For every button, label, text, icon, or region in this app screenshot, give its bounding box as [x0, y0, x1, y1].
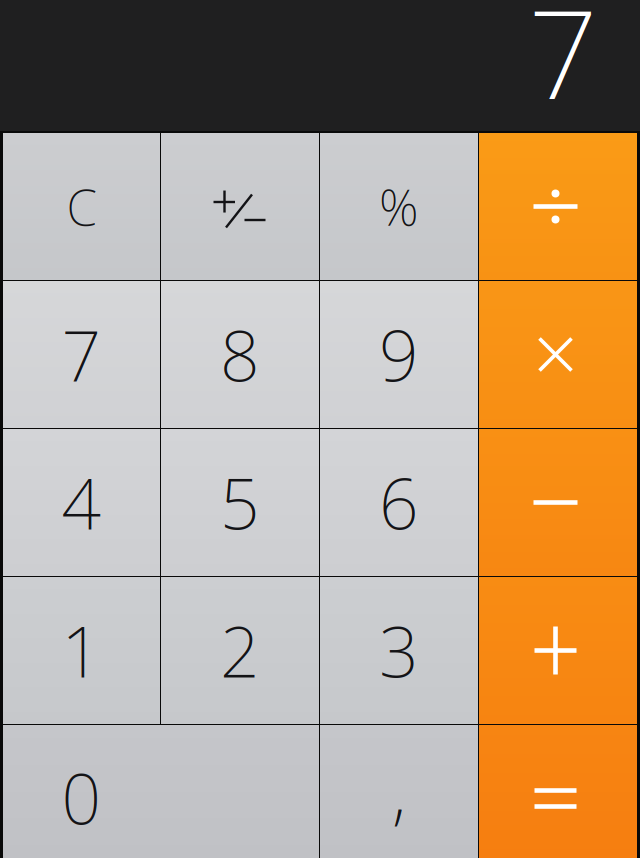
- button[interactable]: Add: [479, 577, 637, 724]
- staticText: 6: [379, 456, 419, 549]
- staticText: 3: [379, 604, 419, 697]
- staticText: 4: [61, 456, 101, 549]
- staticText: 7: [528, 0, 598, 133]
- button[interactable]: 9: [320, 281, 478, 428]
- button[interactable]: Equals: [479, 725, 637, 858]
- staticText: 1: [61, 604, 101, 697]
- button[interactable]: 0: [3, 725, 319, 858]
- button[interactable]: 4: [3, 429, 160, 576]
- button[interactable]: 7: [3, 281, 160, 428]
- button[interactable]: 2: [161, 577, 319, 724]
- staticText: 5: [220, 456, 260, 549]
- button[interactable]: 8: [161, 281, 319, 428]
- button[interactable]: 6: [320, 429, 478, 576]
- staticText: ,: [392, 744, 406, 837]
- button[interactable]: 5: [161, 429, 319, 576]
- staticText: C: [66, 174, 96, 239]
- button[interactable]: 1: [3, 577, 160, 724]
- staticText: 7: [61, 308, 101, 401]
- button[interactable]: %: [320, 133, 478, 280]
- button[interactable]: Subtract: [479, 429, 637, 576]
- button[interactable]: 3: [320, 577, 478, 724]
- staticText: 8: [220, 308, 260, 401]
- staticText: 2: [220, 604, 260, 697]
- staticText: %: [379, 174, 419, 239]
- staticText: 9: [379, 308, 419, 401]
- button[interactable]: Decimal separator: [320, 725, 478, 858]
- staticText: 0: [61, 751, 101, 844]
- button[interactable]: C: [3, 133, 160, 280]
- button[interactable]: Plus minus: [161, 133, 319, 280]
- button[interactable]: Multiply: [479, 281, 637, 428]
- button[interactable]: Divide: [479, 133, 637, 280]
